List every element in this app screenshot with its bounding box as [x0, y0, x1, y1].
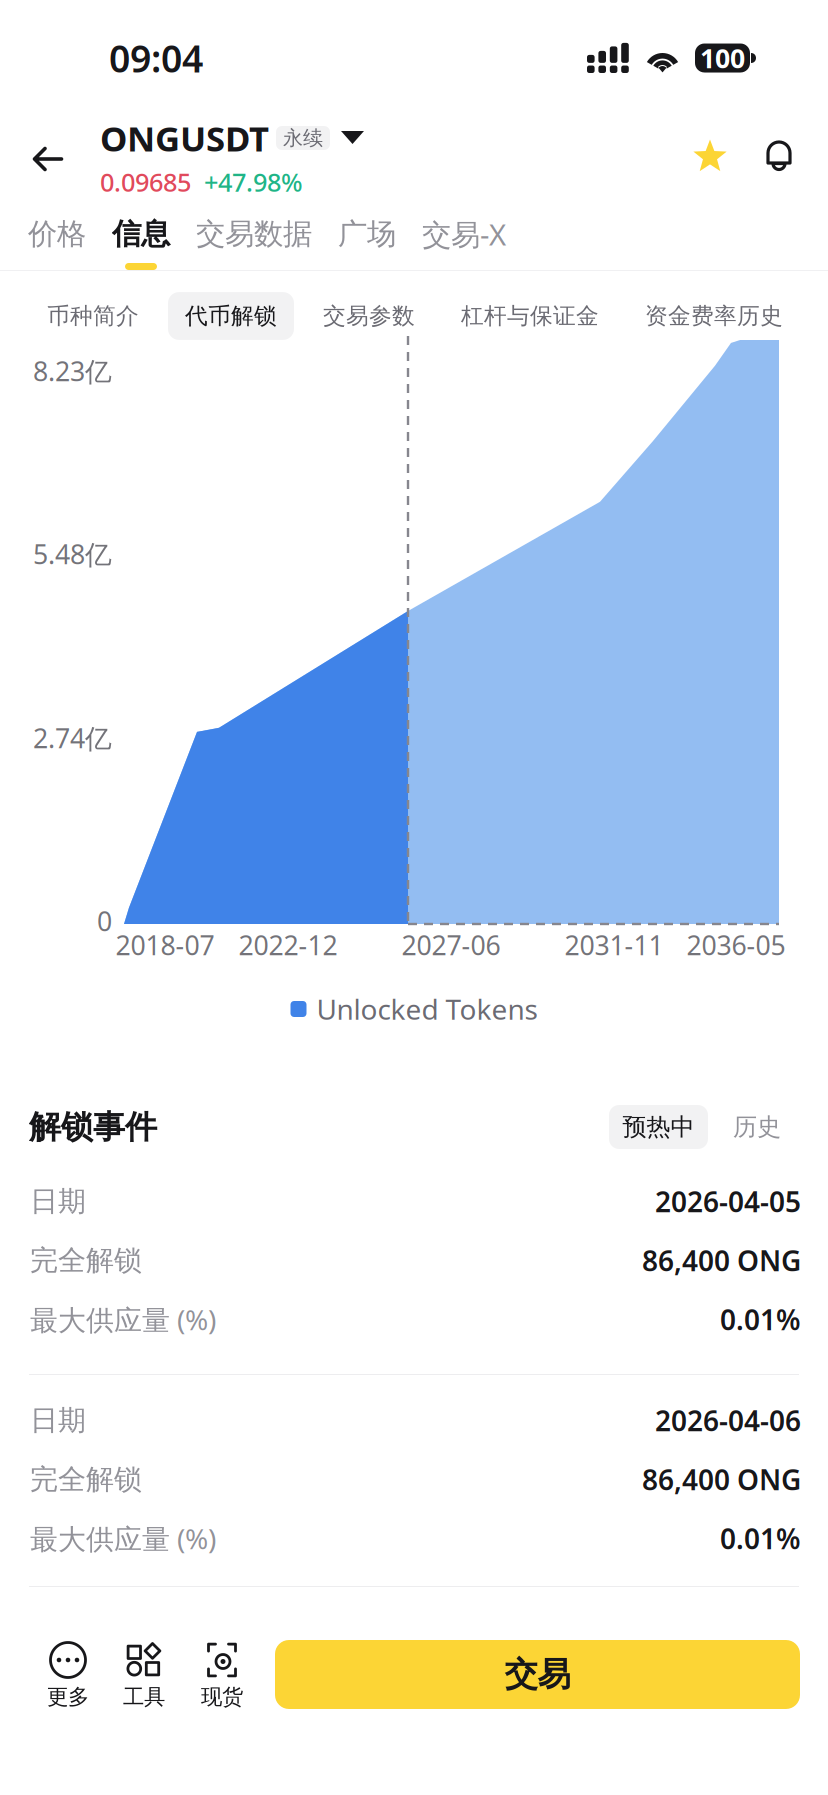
- staticText: 杠杆与保证金: [461, 302, 599, 330]
- staticText: 广场: [338, 216, 396, 252]
- staticText: 0.01%: [720, 1520, 801, 1557]
- staticText: 价格: [28, 216, 86, 252]
- button[interactable]: 价格: [15, 215, 99, 272]
- staticText: 2022-12: [238, 927, 337, 963]
- staticText: 2026-04-05: [655, 1183, 801, 1220]
- button[interactable]: 更多: [30, 1642, 106, 1712]
- button[interactable]: 信息: [99, 215, 183, 272]
- staticText: 信息: [112, 216, 170, 252]
- button[interactable]: Favorite: [679, 126, 741, 188]
- button[interactable]: 交易参数: [306, 292, 432, 340]
- staticText: Unlocked Tokens: [316, 990, 537, 1028]
- staticText: 0: [97, 903, 112, 939]
- button[interactable]: 工具: [106, 1642, 182, 1712]
- staticText: 完全解锁: [30, 1462, 142, 1497]
- staticText: 现货: [201, 1684, 243, 1710]
- staticText: 交易-X: [422, 214, 506, 253]
- button[interactable]: 交易: [275, 1640, 800, 1709]
- staticText: +47.98%: [204, 165, 303, 199]
- staticText: 预热中: [622, 1112, 694, 1142]
- button[interactable]: 币种简介: [30, 292, 156, 340]
- button[interactable]: 预热中: [609, 1105, 708, 1149]
- staticText: 完全解锁: [30, 1243, 142, 1278]
- staticText: 最大供应量 (%): [30, 1301, 216, 1338]
- button[interactable]: 交易数据: [183, 215, 325, 272]
- staticText: 2027-06: [401, 927, 500, 963]
- button[interactable]: 交易-X: [409, 215, 519, 272]
- staticText: 86,400 ONG: [642, 1242, 801, 1279]
- button[interactable]: 广场: [325, 215, 409, 272]
- staticText: 日期: [30, 1184, 86, 1219]
- staticText: 更多: [47, 1684, 89, 1710]
- staticText: 最大供应量 (%): [30, 1520, 216, 1557]
- staticText: 2031-11: [564, 927, 663, 963]
- staticText: 09:04: [109, 33, 203, 83]
- staticText: 86,400 ONG: [642, 1461, 801, 1498]
- staticText: 2018-07: [115, 927, 214, 963]
- staticText: 2.74亿: [33, 720, 112, 756]
- staticText: 历史: [733, 1112, 781, 1142]
- staticText: 0.01%: [720, 1301, 801, 1338]
- button[interactable]: 历史: [722, 1105, 792, 1149]
- staticText: ONGUSDT: [100, 115, 269, 161]
- staticText: 永续: [283, 126, 323, 150]
- button[interactable]: 代币解锁: [168, 292, 294, 340]
- staticText: 100: [700, 40, 745, 76]
- staticText: 2026-04-06: [655, 1402, 801, 1439]
- button[interactable]: 资金费率历史: [628, 292, 800, 340]
- staticText: 0.09685: [100, 165, 191, 199]
- button[interactable]: Price alerts: [750, 124, 812, 186]
- staticText: 币种简介: [47, 302, 139, 330]
- staticText: 解锁事件: [29, 1107, 157, 1147]
- button[interactable]: 现货: [184, 1642, 260, 1712]
- staticText: 交易: [504, 1654, 570, 1695]
- staticText: 代币解锁: [185, 302, 277, 330]
- button[interactable]: 杠杆与保证金: [444, 292, 616, 340]
- button[interactable]: Back: [0, 126, 96, 192]
- staticText: 交易数据: [196, 216, 312, 252]
- staticText: 8.23亿: [33, 353, 112, 389]
- staticText: 2036-05: [686, 927, 785, 963]
- staticText: 交易参数: [323, 302, 415, 330]
- staticText: 日期: [30, 1403, 86, 1438]
- staticText: 资金费率历史: [645, 302, 783, 330]
- staticText: 5.48亿: [33, 536, 112, 572]
- staticText: 工具: [123, 1684, 165, 1710]
